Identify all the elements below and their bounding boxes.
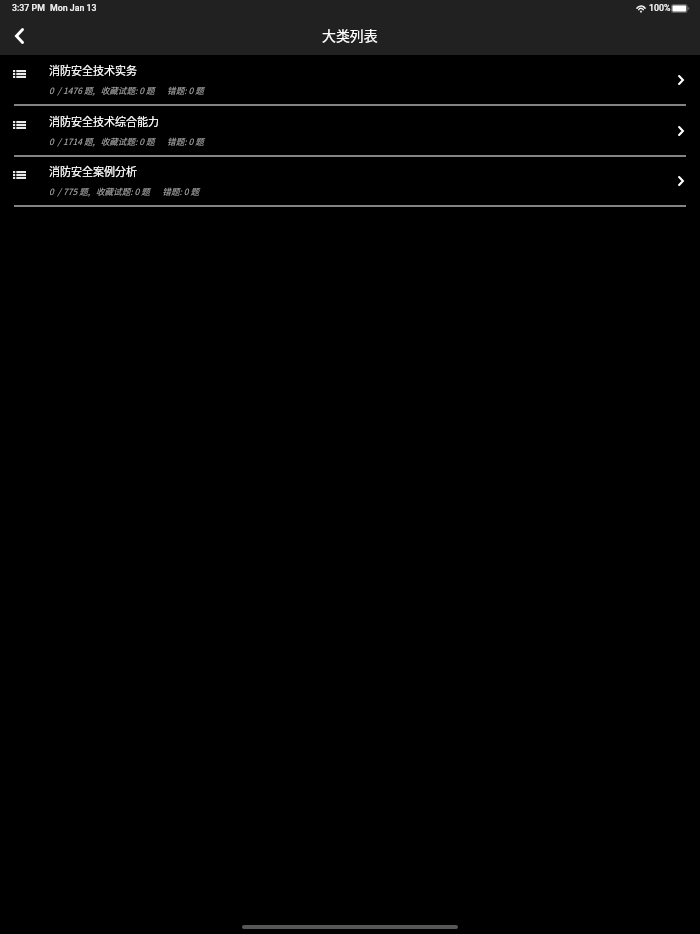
staticText: 消防安全案例分析 — [49, 163, 137, 179]
button[interactable]: 消防安全案例分析 — [0, 156, 700, 207]
staticText: 消防安全技术综合能力 — [49, 113, 159, 129]
staticText: 3:37 PM — [12, 3, 45, 13]
staticText: Mon Jan 13 — [50, 3, 97, 13]
staticText: 消防安全技术实务 — [49, 62, 137, 78]
button[interactable]: Back — [5, 23, 34, 52]
staticText: 0 / 1476 题, 收藏试题: 0 题 错题: 0 题 — [49, 84, 204, 96]
staticText: 100% — [649, 3, 671, 13]
button[interactable]: 消防安全技术实务 — [0, 55, 700, 106]
staticText: 大类列表 — [322, 25, 378, 45]
button[interactable]: 消防安全技术综合能力 — [0, 106, 700, 157]
staticText: 0 / 775 题, 收藏试题: 0 题 错题: 0 题 — [49, 185, 200, 197]
staticText: 0 / 1714 题, 收藏试题: 0 题 错题: 0 题 — [49, 135, 204, 147]
